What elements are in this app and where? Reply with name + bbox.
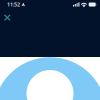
staticText: 11:52 — [7, 1, 20, 8]
button[interactable]: Close — [0, 9, 15, 25]
